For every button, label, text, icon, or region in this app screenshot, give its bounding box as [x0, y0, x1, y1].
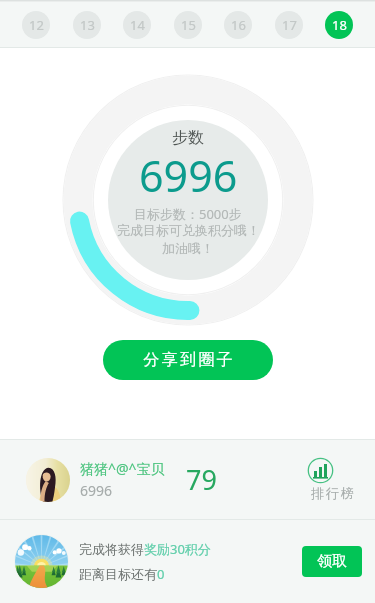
button[interactable]: 14: [123, 11, 151, 39]
staticText: 分享到圈子: [142, 350, 234, 370]
staticText: 距离目标还有0: [79, 565, 165, 583]
button[interactable]: 15: [174, 11, 202, 39]
staticText: 16: [231, 16, 246, 34]
staticText: 14: [130, 16, 145, 34]
button[interactable]: 分享到圈子: [103, 340, 273, 380]
staticText: 17: [282, 16, 297, 34]
button[interactable]: 领取: [302, 546, 362, 577]
button[interactable]: 18: [325, 11, 353, 39]
other: 排行榜: [308, 458, 333, 483]
staticText: 18: [332, 16, 347, 34]
staticText: 6996: [80, 481, 113, 500]
staticText: 完成将获得奖励30积分: [79, 540, 211, 558]
staticText: 领取: [317, 552, 347, 571]
button[interactable]: 排行榜: [310, 458, 355, 501]
staticText: 步数: [172, 128, 204, 148]
button[interactable]: 12: [22, 11, 50, 39]
staticText: 13: [80, 16, 95, 34]
button[interactable]: 猪猪^@^宝贝: [0, 440, 375, 519]
staticText: 6996: [139, 146, 238, 205]
staticText: 排行榜: [310, 485, 355, 501]
staticText: 79: [186, 461, 217, 498]
staticText: 加油哦！: [162, 240, 214, 256]
staticText: 15: [181, 16, 196, 34]
staticText: 猪猪^@^宝贝: [80, 459, 165, 478]
button[interactable]: 13: [73, 11, 101, 39]
button[interactable]: 16: [224, 11, 252, 39]
staticText: 完成目标可兑换积分哦！: [117, 222, 260, 238]
staticText: 12: [29, 16, 44, 34]
staticText: 目标步数：5000步: [134, 205, 242, 223]
button[interactable]: 完成将获得奖励30积分: [0, 520, 375, 603]
button[interactable]: 17: [275, 11, 303, 39]
